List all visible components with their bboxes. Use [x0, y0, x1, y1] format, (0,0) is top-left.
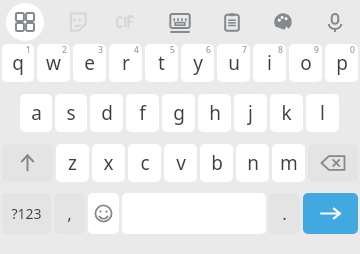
- staticText: i: [267, 50, 272, 76]
- button[interactable]: i: [253, 44, 286, 82]
- button[interactable]: t: [145, 44, 178, 82]
- button[interactable]: c: [128, 144, 161, 182]
- staticText: d: [101, 100, 113, 126]
- staticText: 8: [278, 44, 283, 56]
- button[interactable]: o: [289, 44, 322, 82]
- button[interactable]: Shift: [2, 144, 53, 182]
- button[interactable]: d: [90, 94, 123, 132]
- button[interactable]: ,: [54, 193, 85, 234]
- button[interactable]: a: [20, 94, 52, 132]
- button[interactable]: v: [164, 144, 197, 182]
- staticText: o: [300, 50, 312, 76]
- button[interactable]: k: [270, 94, 303, 132]
- button[interactable]: z: [56, 144, 89, 182]
- staticText: 6: [206, 44, 211, 56]
- staticText: r: [122, 50, 130, 76]
- button[interactable]: n: [236, 144, 269, 182]
- button[interactable]: x: [92, 144, 125, 182]
- staticText: 7: [242, 44, 247, 56]
- staticText: k: [281, 100, 292, 126]
- staticText: z: [68, 150, 77, 176]
- staticText: g: [173, 100, 185, 126]
- button[interactable]: w: [37, 44, 70, 82]
- button[interactable]: p: [325, 44, 358, 82]
- button[interactable]: ?123: [2, 193, 51, 234]
- staticText: 4: [134, 44, 139, 56]
- button[interactable]: Enter: [303, 193, 358, 234]
- button[interactable]: GIF: [109, 3, 147, 41]
- staticText: .: [282, 202, 287, 225]
- staticText: 5: [170, 44, 175, 56]
- staticText: 1: [26, 44, 31, 56]
- staticText: x: [103, 150, 114, 176]
- button[interactable]: Stickers: [58, 3, 96, 41]
- button[interactable]: u: [217, 44, 250, 82]
- button[interactable]: j: [234, 94, 267, 132]
- button[interactable]: Themes: [264, 3, 302, 41]
- staticText: p: [336, 50, 348, 76]
- staticText: y: [193, 50, 203, 76]
- staticText: m: [280, 150, 298, 176]
- staticText: a: [31, 100, 42, 126]
- button[interactable]: l: [306, 94, 339, 132]
- staticText: 3: [98, 44, 103, 56]
- button[interactable]: s: [55, 94, 87, 132]
- button[interactable]: q: [2, 44, 34, 82]
- button[interactable]: g: [162, 94, 195, 132]
- button[interactable]: .: [269, 193, 300, 234]
- staticText: 9: [314, 44, 319, 56]
- staticText: v: [176, 150, 186, 176]
- button[interactable]: Backspace: [308, 144, 358, 182]
- button[interactable]: All apps: [6, 3, 44, 41]
- staticText: ,: [67, 202, 72, 225]
- staticText: ?123: [11, 204, 42, 223]
- staticText: f: [139, 100, 146, 126]
- button[interactable]: Clipboard: [213, 3, 251, 41]
- button[interactable]: Keyboard settings: [161, 3, 199, 41]
- button[interactable]: b: [200, 144, 233, 182]
- staticText: l: [320, 100, 325, 126]
- staticText: e: [84, 50, 95, 76]
- button[interactable]: m: [272, 144, 305, 182]
- button[interactable]: h: [198, 94, 231, 132]
- button[interactable]: e: [73, 44, 106, 82]
- button[interactable]: Voice input: [316, 3, 354, 41]
- button[interactable]: y: [181, 44, 214, 82]
- staticText: h: [209, 100, 221, 126]
- staticText: w: [46, 50, 61, 76]
- staticText: c: [140, 150, 150, 176]
- staticText: u: [228, 50, 240, 76]
- staticText: j: [248, 100, 253, 126]
- button[interactable]: Emoji: [88, 193, 119, 234]
- staticText: t: [158, 50, 165, 76]
- staticText: q: [12, 50, 24, 76]
- staticText: 0: [350, 44, 355, 56]
- button[interactable]: f: [126, 94, 159, 132]
- staticText: b: [211, 150, 223, 176]
- staticText: 2: [62, 44, 67, 56]
- button[interactable]: r: [109, 44, 142, 82]
- staticText: n: [247, 150, 259, 176]
- staticText: s: [66, 100, 76, 126]
